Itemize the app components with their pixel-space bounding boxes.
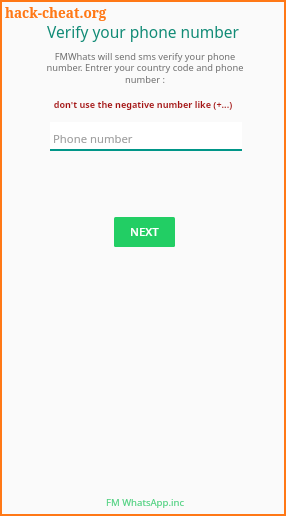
staticText: hack-cheat.org [5,4,107,22]
staticText: NEXT [130,224,159,240]
staticText: FM WhatsApp.inc [4,496,286,509]
staticText: don't use the negative number like (+...… [2,98,284,110]
staticText: Phone number [53,131,133,146]
staticText: FMWhats will send sms verify your phone … [45,50,245,86]
button[interactable]: Phone number input [50,122,242,151]
staticText: Verify your phone number [2,21,284,42]
button[interactable]: NEXT [114,217,175,247]
